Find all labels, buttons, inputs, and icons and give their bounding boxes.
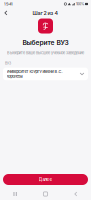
staticText: Шаг 2 из 4	[32, 10, 58, 16]
staticText: 100%	[76, 2, 84, 6]
button[interactable]: Home	[30, 189, 61, 199]
staticText: Выберите ваше высшее учебное заведение	[7, 51, 84, 55]
button[interactable]: Далее	[3, 174, 88, 185]
button[interactable]: Back	[61, 189, 91, 199]
button[interactable]: Recents	[0, 189, 30, 199]
staticText: Далее	[38, 177, 52, 182]
button[interactable]: Back	[0, 8, 12, 18]
staticText: Выберите ВУЗ	[22, 38, 68, 47]
button[interactable]: Университет ЮУрГУ имени В.С. Королёва	[3, 68, 88, 80]
staticText: ВУЗ	[5, 61, 11, 65]
staticText: Университет ЮУрГУ имени В.С. Королёва	[6, 69, 62, 79]
staticText: 15:41	[4, 2, 13, 6]
